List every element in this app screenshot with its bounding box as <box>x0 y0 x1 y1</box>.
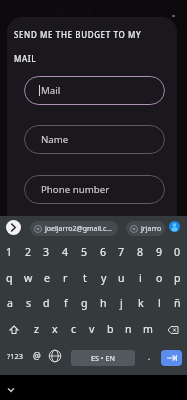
staticText: j <box>120 296 123 310</box>
staticText: Mail <box>41 84 61 97</box>
button[interactable]: r <box>56 266 75 290</box>
staticText: 4 <box>62 245 69 259</box>
staticText: i <box>139 271 142 285</box>
staticText: joeljarro2@gmail.c... <box>45 224 112 234</box>
button[interactable]: o <box>150 266 169 290</box>
button[interactable]: c <box>64 317 83 341</box>
button[interactable]: x <box>45 317 64 341</box>
button[interactable]: q <box>0 266 19 290</box>
button[interactable]: ?123 <box>4 344 25 368</box>
button[interactable]: 2 <box>19 240 38 264</box>
staticText: b <box>107 322 114 336</box>
staticText: s <box>26 296 32 310</box>
button[interactable]: Phone number <box>24 175 165 204</box>
button[interactable]: 3 <box>37 240 56 264</box>
button[interactable]: @ <box>28 344 46 368</box>
staticText: 0 <box>174 245 181 259</box>
staticText: n <box>125 322 132 336</box>
button[interactable]: g <box>75 291 94 315</box>
button[interactable]: joeljarro2@gmail.c... <box>30 221 118 236</box>
button[interactable]: n <box>119 317 138 341</box>
staticText: v <box>89 322 95 336</box>
button[interactable]: v <box>82 317 101 341</box>
staticText: . <box>148 351 151 362</box>
staticText: h <box>100 296 107 310</box>
staticText: Phone number <box>41 183 110 196</box>
staticText: z <box>34 322 39 336</box>
button[interactable]: 4 <box>56 240 75 264</box>
button[interactable]: i <box>131 266 150 290</box>
button[interactable]: Enter <box>161 350 182 366</box>
button[interactable]: a <box>0 291 19 315</box>
button[interactable]: y <box>94 266 113 290</box>
staticText: MAIL <box>14 53 37 64</box>
button[interactable]: w <box>19 266 38 290</box>
button[interactable]: m <box>138 317 157 341</box>
button[interactable]: 1 <box>0 240 19 264</box>
button[interactable]: Change language <box>45 344 64 368</box>
button[interactable]: j <box>112 291 131 315</box>
button[interactable]: f <box>56 291 75 315</box>
staticText: d <box>43 296 50 310</box>
staticText: ?123 <box>7 351 23 361</box>
button[interactable]: h <box>94 291 113 315</box>
staticText: jrjarro <box>141 224 162 234</box>
staticText: f <box>64 296 68 310</box>
button[interactable]: jrjarro <box>126 221 165 236</box>
staticText: SEND ME THE BUDGET TO MY <box>14 29 142 40</box>
button[interactable]: z <box>27 317 46 341</box>
button[interactable]: u <box>112 266 131 290</box>
staticText: 8 <box>137 245 144 259</box>
button[interactable]: Backspace <box>163 318 182 342</box>
button[interactable]: k <box>131 291 150 315</box>
staticText: o <box>156 271 163 285</box>
button[interactable]: l <box>150 291 169 315</box>
button[interactable]: d <box>37 291 56 315</box>
staticText: 1 <box>6 245 13 259</box>
button[interactable]: t <box>75 266 94 290</box>
staticText: y <box>101 271 107 285</box>
button[interactable]: e <box>37 266 56 290</box>
staticText: w <box>24 271 33 285</box>
button[interactable]: 7 <box>112 240 131 264</box>
button[interactable]: 9 <box>150 240 169 264</box>
staticText: r <box>63 271 68 285</box>
button[interactable]: b <box>101 317 120 341</box>
staticText: e <box>44 271 50 285</box>
staticText: 7 <box>118 245 125 259</box>
button[interactable]: ñ <box>168 291 187 315</box>
button[interactable]: s <box>19 291 38 315</box>
staticText: c <box>71 322 77 336</box>
staticText: m <box>143 322 153 336</box>
staticText: k <box>138 296 144 310</box>
staticText: x <box>52 322 58 336</box>
staticText: p <box>174 271 181 285</box>
button[interactable]: 0 <box>168 240 187 264</box>
button[interactable]: ES • EN <box>71 350 135 366</box>
staticText: Name <box>41 133 69 146</box>
button[interactable]: 6 <box>94 240 113 264</box>
staticText: g <box>81 296 88 310</box>
staticText: t <box>83 271 87 285</box>
button[interactable]: Contact <box>169 221 180 232</box>
button[interactable]: Hide keyboard <box>1 378 19 396</box>
button[interactable]: p <box>168 266 187 290</box>
staticText: ES • EN <box>91 353 115 363</box>
staticText: 5 <box>81 245 88 259</box>
staticText: a <box>7 296 13 310</box>
staticText: 6 <box>100 245 107 259</box>
button[interactable]: Shift <box>4 318 23 342</box>
button[interactable]: Mail <box>24 76 165 105</box>
button[interactable]: More suggestions <box>6 220 21 235</box>
staticText: @ <box>33 350 41 362</box>
staticText: l <box>158 296 161 310</box>
staticText: 2 <box>25 245 32 259</box>
staticText: q <box>6 271 13 285</box>
button[interactable]: . <box>141 346 157 366</box>
staticText: u <box>118 271 125 285</box>
button[interactable]: Name <box>24 125 165 154</box>
staticText: 3 <box>43 245 50 259</box>
button[interactable]: 5 <box>75 240 94 264</box>
button[interactable]: 8 <box>131 240 150 264</box>
